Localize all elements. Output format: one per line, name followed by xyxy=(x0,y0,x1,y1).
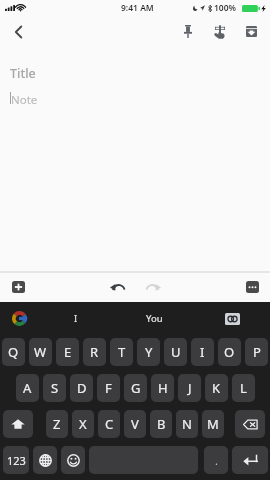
button[interactable]: I xyxy=(191,338,214,366)
staticText: V xyxy=(131,415,139,433)
staticText: E xyxy=(64,343,72,361)
button[interactable]: Clipboard xyxy=(222,308,243,329)
staticText: . xyxy=(215,453,218,468)
button[interactable]: Backspace xyxy=(235,410,265,438)
staticText: W xyxy=(34,343,47,361)
staticText: Y xyxy=(145,343,153,361)
button[interactable]: Emoji xyxy=(61,446,85,474)
staticText: You xyxy=(146,312,163,325)
button[interactable]: Z xyxy=(46,410,68,438)
staticText: M xyxy=(207,415,219,433)
staticText: I xyxy=(200,343,205,361)
button[interactable]: W xyxy=(29,338,52,366)
staticText: T xyxy=(118,343,126,361)
button[interactable]: X xyxy=(72,410,94,438)
button[interactable]: K xyxy=(205,374,228,402)
button[interactable]: I xyxy=(43,302,108,334)
button[interactable]: D xyxy=(70,374,93,402)
button[interactable]: L xyxy=(232,374,255,402)
staticText: A xyxy=(23,379,32,397)
staticText: N xyxy=(182,415,192,433)
button[interactable]: G xyxy=(124,374,147,402)
button[interactable]: R xyxy=(83,338,106,366)
staticText: Q xyxy=(8,343,19,361)
staticText: C xyxy=(105,415,114,433)
staticText: S xyxy=(51,379,59,397)
button[interactable]: Add xyxy=(12,281,25,293)
staticText: G xyxy=(131,379,141,397)
button[interactable]: E xyxy=(56,338,79,366)
button[interactable]: T xyxy=(110,338,133,366)
staticText: 123 xyxy=(7,453,26,468)
staticText: L xyxy=(240,379,247,397)
staticText: Title xyxy=(10,65,36,82)
staticText: X xyxy=(79,415,87,433)
button[interactable]: 123 xyxy=(3,446,29,474)
button[interactable]: Shift xyxy=(3,410,33,438)
staticText: K xyxy=(212,379,221,397)
staticText: B xyxy=(157,415,166,433)
button[interactable]: . xyxy=(204,446,228,474)
staticText: P xyxy=(253,343,261,361)
button[interactable]: V xyxy=(124,410,146,438)
button[interactable]: You xyxy=(122,302,187,334)
staticText: Z xyxy=(53,415,61,433)
button[interactable]: F xyxy=(97,374,120,402)
staticText: H xyxy=(158,379,168,397)
button[interactable]: A xyxy=(16,374,39,402)
button[interactable]: Undo xyxy=(105,277,129,297)
button[interactable]: More options xyxy=(246,281,259,293)
button[interactable]: N xyxy=(176,410,198,438)
button[interactable]: Pin xyxy=(172,16,203,47)
button[interactable]: Q xyxy=(2,338,25,366)
button[interactable]: Archive xyxy=(236,16,267,47)
staticText: J xyxy=(188,379,192,397)
staticText: D xyxy=(77,379,87,397)
staticText: F xyxy=(105,379,112,397)
button[interactable]: M xyxy=(202,410,224,438)
button[interactable]: Change language xyxy=(33,446,57,474)
button[interactable]: B xyxy=(150,410,172,438)
button[interactable]: Y xyxy=(137,338,160,366)
button[interactable]: Enter xyxy=(232,446,268,474)
button[interactable]: P xyxy=(245,338,268,366)
staticText: R xyxy=(90,343,99,361)
button[interactable]: O xyxy=(218,338,241,366)
button[interactable]: J xyxy=(178,374,201,402)
button[interactable]: H xyxy=(151,374,174,402)
staticText: O xyxy=(224,343,235,361)
staticText: 100% xyxy=(214,2,237,14)
button[interactable]: S xyxy=(43,374,66,402)
button[interactable]: Redo xyxy=(141,277,165,297)
button[interactable]: U xyxy=(164,338,187,366)
button[interactable]: Reminder xyxy=(204,16,235,47)
button[interactable]: Back xyxy=(0,16,36,47)
staticText: I xyxy=(74,312,78,325)
staticText: Note xyxy=(11,92,38,108)
staticText: 9:41 AM xyxy=(121,2,154,14)
button[interactable]: Google Assistant xyxy=(10,309,28,327)
staticText: U xyxy=(171,343,181,361)
button[interactable]: C xyxy=(98,410,120,438)
